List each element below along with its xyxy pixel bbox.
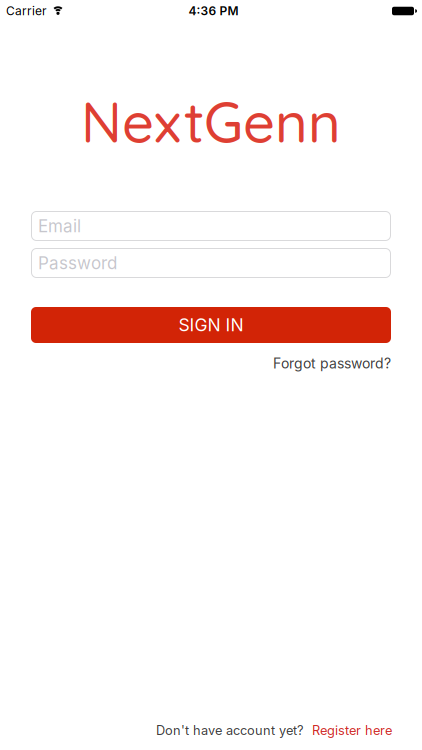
staticText: Email — [38, 216, 81, 236]
staticText: NextGenn — [81, 86, 341, 156]
button[interactable]: Forgot password? — [273, 355, 391, 372]
staticText: Forgot password? — [273, 355, 391, 372]
staticText: Don't have account yet? — [156, 722, 304, 738]
textField[interactable]: Email — [31, 213, 391, 239]
button[interactable]: SIGN IN — [31, 307, 391, 343]
button[interactable]: Register here — [312, 722, 392, 738]
staticText: Carrier — [6, 4, 47, 18]
staticText: 4:36 PM — [188, 4, 238, 18]
staticText: Email — [31, 213, 88, 239]
staticText: SIGN IN — [178, 314, 243, 336]
staticText: Password — [31, 250, 135, 276]
secureTextField[interactable]: Password — [31, 250, 391, 276]
staticText: Register here — [312, 722, 392, 738]
staticText: Password — [38, 253, 117, 273]
